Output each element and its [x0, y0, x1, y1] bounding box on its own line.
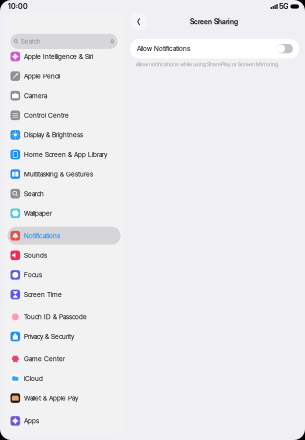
staticText: Focus — [24, 271, 42, 279]
button[interactable]: iCloud — [7, 369, 120, 387]
button[interactable]: Display & Brightness — [7, 126, 120, 144]
button[interactable]: Wallet & Apple Pay — [7, 389, 120, 407]
button[interactable]: Apple Pencil — [7, 67, 120, 85]
button[interactable]: Apple Intelligence & Siri — [7, 47, 120, 65]
staticText: 10:00 — [8, 2, 28, 11]
staticText: Allow Notifications — [137, 45, 190, 53]
staticText: Touch ID & Passcode — [24, 313, 87, 321]
button[interactable]: Game Center — [7, 350, 120, 368]
staticText: Search — [24, 190, 44, 198]
staticText: Search — [21, 37, 41, 45]
button[interactable]: Back — [130, 13, 147, 30]
button[interactable]: Notifications — [7, 227, 120, 245]
button[interactable]: Search — [7, 185, 120, 203]
staticText: Privacy & Security — [24, 332, 74, 341]
button[interactable]: Camera — [7, 87, 120, 105]
staticText: Multitasking & Gestures — [24, 170, 93, 178]
staticText: Allow notifications while using SharePla… — [136, 61, 279, 67]
staticText: Notifications — [24, 232, 60, 240]
button[interactable]: Apps — [7, 412, 120, 430]
staticText: Display & Brightness — [24, 131, 83, 139]
staticText: Wallpaper — [24, 209, 52, 217]
button[interactable]: Control Centre — [7, 106, 120, 124]
staticText: Apple Pencil — [24, 72, 60, 80]
staticText: Screen Time — [24, 290, 62, 299]
staticText: Apps — [24, 417, 39, 425]
staticText: Apple Intelligence & Siri — [24, 52, 93, 61]
button[interactable]: Allow Notifications — [130, 39, 299, 58]
staticText: Wallet & Apple Pay — [24, 394, 78, 402]
staticText: iCloud — [24, 374, 43, 383]
staticText: Camera — [24, 92, 47, 100]
button[interactable]: Sounds — [7, 246, 120, 264]
button[interactable]: Wallpaper — [7, 204, 120, 222]
staticText: 5G — [279, 2, 288, 11]
button[interactable]: Touch ID & Passcode — [7, 308, 120, 326]
button[interactable]: Privacy & Security — [7, 327, 120, 345]
staticText: Game Center — [24, 355, 65, 363]
button[interactable]: Home Screen & App Library — [7, 145, 120, 163]
button[interactable]: Focus — [7, 266, 120, 284]
staticText: Control Centre — [24, 111, 69, 119]
staticText: Screen Sharing — [190, 17, 238, 26]
staticText: Home Screen & App Library — [24, 150, 107, 159]
button[interactable]: Screen Time — [7, 285, 120, 303]
button[interactable]: Multitasking & Gestures — [7, 165, 120, 183]
staticText: Sounds — [24, 251, 47, 259]
